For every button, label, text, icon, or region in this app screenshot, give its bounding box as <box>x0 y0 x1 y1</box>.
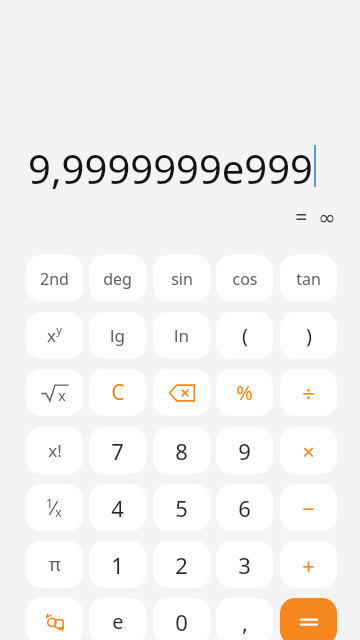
button[interactable]: Unit converter <box>26 598 83 640</box>
staticText: tan <box>296 268 321 290</box>
staticText: cos <box>232 268 258 290</box>
button[interactable]: π <box>26 541 83 588</box>
button[interactable]: deg <box>89 255 146 302</box>
button[interactable]: x <box>26 312 83 359</box>
staticText: 1 <box>111 550 124 580</box>
button[interactable]: Backspace <box>153 369 210 416</box>
staticText: 2nd <box>40 268 69 290</box>
staticText: x <box>58 386 66 405</box>
button[interactable]: + <box>280 541 337 588</box>
staticText: 1 <box>46 495 53 511</box>
button[interactable]: ln <box>153 312 210 359</box>
button[interactable] <box>280 598 337 640</box>
staticText: % <box>236 379 253 406</box>
staticText: ÷ <box>302 378 315 408</box>
staticText: ) <box>306 322 312 349</box>
staticText: × <box>302 436 315 466</box>
button[interactable]: C <box>89 369 146 416</box>
staticText: ( <box>242 322 248 349</box>
staticText: sin <box>171 268 193 290</box>
staticText: x <box>47 324 56 347</box>
button[interactable]: x! <box>26 427 83 474</box>
staticText: x <box>55 504 62 520</box>
staticText: + <box>302 550 315 580</box>
button[interactable]: 2nd <box>26 255 83 302</box>
staticText: deg <box>103 268 132 290</box>
button[interactable]: 0 <box>153 598 210 640</box>
staticText: ⁄ <box>52 495 55 521</box>
staticText: 9,9999999e999 <box>28 141 313 195</box>
button[interactable]: x <box>26 369 83 416</box>
staticText: , <box>242 607 248 637</box>
staticText: 9 <box>238 436 251 466</box>
button[interactable]: 3 <box>216 541 273 588</box>
button[interactable]: ÷ <box>280 369 337 416</box>
button[interactable]: e <box>89 598 146 640</box>
button[interactable]: ) <box>280 312 337 359</box>
button[interactable]: sin <box>153 255 210 302</box>
button[interactable]: cos <box>216 255 273 302</box>
staticText: y <box>56 322 62 337</box>
button[interactable]: lg <box>89 312 146 359</box>
button[interactable]: × <box>280 427 337 474</box>
button[interactable]: 5 <box>153 484 210 531</box>
button[interactable]: − <box>280 484 337 531</box>
staticText: lg <box>110 324 125 347</box>
staticText: C <box>111 378 125 407</box>
button[interactable]: 2 <box>153 541 210 588</box>
button[interactable]: 6 <box>216 484 273 531</box>
button[interactable]: , <box>216 598 273 640</box>
staticText: 6 <box>238 493 251 523</box>
button[interactable]: 1 <box>89 541 146 588</box>
staticText: = ∞ <box>295 203 336 232</box>
staticText: ln <box>174 324 189 347</box>
staticText: e <box>112 608 124 635</box>
staticText: 2 <box>175 550 188 580</box>
button[interactable]: 4 <box>89 484 146 531</box>
staticText: π <box>49 552 61 577</box>
button[interactable]: 9 <box>216 427 273 474</box>
staticText: 8 <box>175 436 188 466</box>
staticText: − <box>302 493 315 523</box>
button[interactable]: 8 <box>153 427 210 474</box>
button[interactable]: % <box>216 369 273 416</box>
button[interactable]: ( <box>216 312 273 359</box>
staticText: 3 <box>238 550 251 580</box>
button[interactable]: 7 <box>89 427 146 474</box>
staticText: 0 <box>175 607 188 637</box>
button[interactable]: 1 <box>26 484 83 531</box>
staticText: 5 <box>175 493 188 523</box>
staticText: 7 <box>111 436 124 466</box>
button[interactable]: tan <box>280 255 337 302</box>
staticText: 4 <box>111 493 124 523</box>
staticText: x! <box>48 439 62 462</box>
